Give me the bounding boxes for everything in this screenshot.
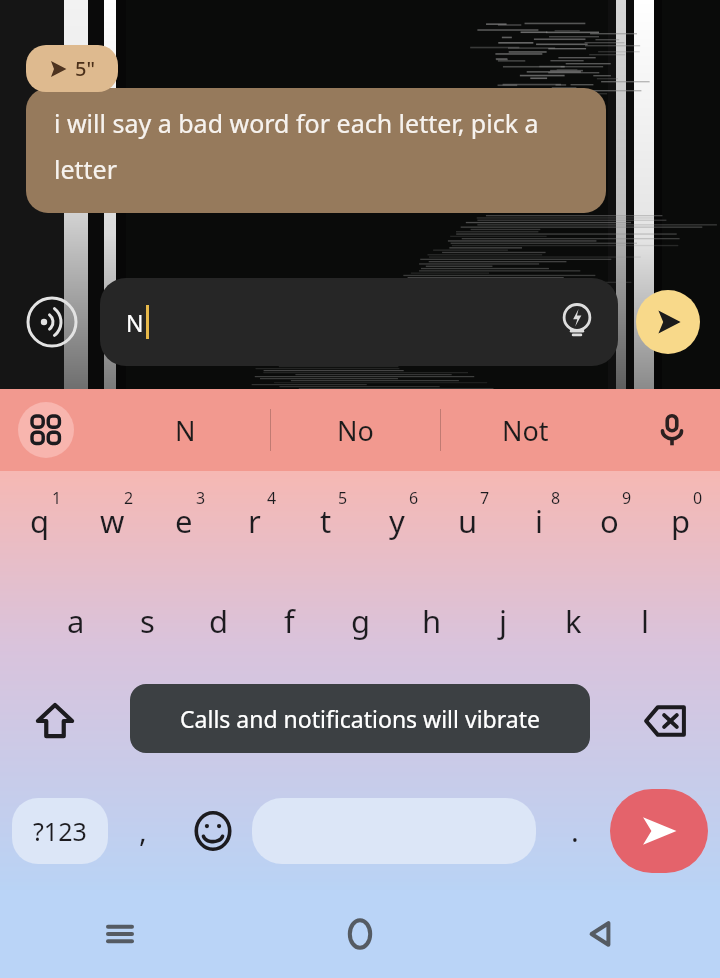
staticText: .	[571, 811, 579, 850]
button[interactable]: r	[219, 471, 290, 571]
button[interactable]: h	[396, 571, 467, 671]
staticText: x	[210, 700, 227, 742]
button[interactable]: Play audio message	[26, 296, 78, 348]
button[interactable]: Recent apps	[0, 890, 240, 978]
staticText: ?123	[33, 814, 87, 848]
staticText: 6	[409, 487, 419, 509]
button[interactable]: Voice input	[646, 404, 698, 456]
staticText: l	[641, 600, 649, 642]
staticText: N	[126, 307, 144, 338]
button[interactable]: b	[397, 671, 468, 771]
button[interactable]: c	[254, 671, 326, 771]
staticText: y	[389, 500, 405, 542]
staticText: g	[351, 600, 371, 642]
button[interactable]: Send message	[610, 789, 708, 873]
button[interactable]: g	[325, 571, 396, 671]
staticText: 1	[52, 487, 62, 509]
staticText: 7	[480, 487, 490, 509]
button[interactable]: N	[100, 278, 618, 366]
button[interactable]: Send	[636, 290, 700, 354]
staticText: i will say a bad word for each letter, p…	[54, 106, 586, 186]
button[interactable]: Space	[252, 798, 536, 864]
staticText: 3	[196, 487, 206, 509]
button[interactable]: Shift	[0, 671, 110, 771]
button[interactable]: Smart reply suggestions	[554, 299, 600, 345]
button[interactable]: s	[112, 571, 183, 671]
staticText: q	[30, 500, 50, 542]
staticText: 5	[338, 487, 348, 509]
button[interactable]: .	[540, 771, 610, 890]
button[interactable]: v	[326, 671, 397, 771]
button[interactable]: Keyboard toolbar	[18, 402, 74, 458]
button[interactable]: d	[183, 571, 254, 671]
button[interactable]: Home	[240, 890, 480, 978]
button[interactable]: x	[182, 671, 254, 771]
button[interactable]: k	[538, 571, 609, 671]
staticText: n	[494, 700, 514, 742]
button[interactable]: w	[76, 471, 148, 571]
button[interactable]: m	[539, 671, 610, 771]
button[interactable]: e	[148, 471, 219, 571]
staticText: o	[600, 500, 619, 542]
staticText: 0	[693, 487, 703, 509]
staticText: p	[671, 500, 691, 542]
button[interactable]: l	[609, 571, 680, 671]
staticText: s	[140, 600, 155, 642]
staticText: 9	[622, 487, 632, 509]
staticText: v	[354, 700, 370, 742]
button[interactable]: No	[271, 389, 440, 471]
button[interactable]: u	[432, 471, 503, 571]
staticText: ,	[139, 811, 147, 850]
staticText: j	[499, 600, 507, 642]
button[interactable]: i will say a bad word for each letter, p…	[26, 88, 606, 213]
staticText: 5"	[75, 55, 96, 82]
staticText: h	[422, 600, 442, 642]
button[interactable]: i	[503, 471, 574, 571]
button[interactable]: Emoji	[178, 771, 248, 890]
staticText: t	[320, 500, 332, 542]
staticText: u	[458, 500, 478, 542]
staticText: r	[248, 500, 261, 542]
staticText: 2	[124, 487, 134, 509]
button[interactable]: z	[110, 671, 182, 771]
button[interactable]: j	[467, 571, 538, 671]
button[interactable]: p	[645, 471, 716, 571]
staticText: i	[535, 500, 543, 542]
staticText: No	[337, 412, 374, 449]
staticText: d	[209, 600, 229, 642]
staticText: a	[67, 600, 85, 642]
staticText: 8	[551, 487, 561, 509]
staticText: e	[175, 500, 193, 542]
button[interactable]: t	[290, 471, 361, 571]
button[interactable]: 5"	[26, 45, 118, 92]
staticText: w	[100, 500, 125, 542]
staticText: N	[175, 412, 196, 449]
staticText: k	[565, 600, 582, 642]
staticText: 4	[267, 487, 277, 509]
button[interactable]: Not	[441, 389, 610, 471]
button[interactable]: y	[361, 471, 432, 571]
button[interactable]: q	[4, 471, 76, 571]
staticText: Calls and notifications will vibrate	[180, 703, 540, 734]
button[interactable]: ,	[108, 771, 178, 890]
button[interactable]: f	[254, 571, 325, 671]
button[interactable]: n	[468, 671, 539, 771]
staticText: Not	[502, 412, 549, 449]
staticText: b	[423, 700, 443, 742]
staticText: c	[283, 700, 298, 742]
button[interactable]: ?123	[12, 798, 108, 864]
staticText: f	[284, 600, 295, 642]
button[interactable]: N	[100, 389, 270, 471]
button[interactable]: Backspace	[610, 671, 720, 771]
button[interactable]: o	[574, 471, 645, 571]
button[interactable]: a	[40, 571, 112, 671]
button[interactable]: Back	[480, 890, 720, 978]
